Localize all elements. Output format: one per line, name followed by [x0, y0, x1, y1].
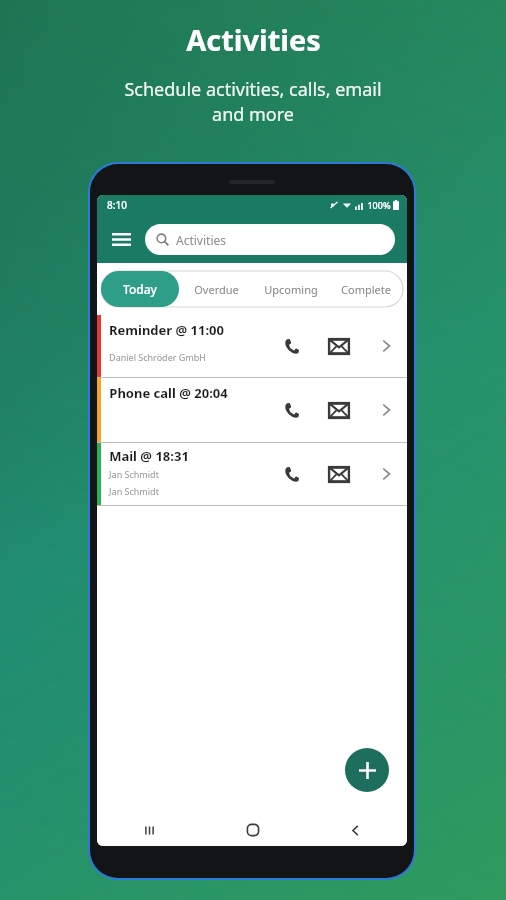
staticText: Today — [123, 281, 157, 297]
staticText: Schedule activities, calls, email — [124, 77, 382, 102]
button[interactable]: Today — [101, 271, 179, 307]
staticText: Mail @ 18:31 — [109, 447, 189, 465]
button[interactable]: Home — [201, 814, 304, 846]
staticText: Jan Schmidt — [109, 485, 159, 497]
button[interactable]: Call — [267, 315, 313, 377]
staticText: Jan Schmidt — [109, 468, 159, 480]
button[interactable]: Email — [313, 443, 365, 505]
staticText: Overdue — [194, 282, 239, 297]
button[interactable]: Phone call @ 20:04 — [97, 378, 407, 442]
staticText: Daniel Schröder GmbH — [109, 351, 206, 363]
staticText: Activities — [176, 232, 226, 248]
button[interactable]: Open navigation menu — [105, 223, 137, 255]
button[interactable]: Open details — [365, 443, 407, 505]
button[interactable]: Call — [267, 443, 313, 505]
staticText: Complete — [341, 282, 391, 297]
button[interactable]: Email — [313, 315, 365, 377]
button[interactable]: Recent apps — [97, 814, 201, 846]
button[interactable]: Email — [313, 378, 365, 442]
button[interactable]: Back — [304, 814, 407, 846]
button[interactable]: Open details — [365, 378, 407, 442]
staticText: Reminder @ 11:00 — [109, 321, 224, 339]
button[interactable]: Complete — [328, 271, 403, 307]
staticText: 8:10 — [107, 198, 127, 212]
button[interactable]: Open details — [365, 315, 407, 377]
staticText: Activities — [186, 20, 321, 59]
button[interactable]: Activities — [145, 224, 395, 255]
button[interactable]: Upcoming — [253, 271, 328, 307]
button[interactable]: Add activity — [345, 748, 389, 792]
button[interactable]: Overdue — [179, 271, 253, 307]
staticText: 100% — [367, 199, 391, 211]
button[interactable]: Reminder @ 11:00 — [97, 315, 407, 377]
button[interactable]: Call — [267, 378, 313, 442]
staticText: Upcoming — [264, 282, 318, 297]
button[interactable]: Mail @ 18:31 — [97, 443, 407, 505]
staticText: and more — [212, 102, 294, 127]
staticText: Phone call @ 20:04 — [109, 384, 228, 402]
